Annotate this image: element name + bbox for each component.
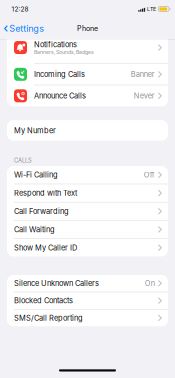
staticText: On [145,279,155,288]
staticText: Banners, Sounds, Badges [34,49,94,55]
button[interactable]: Silence Unknown Callers [7,275,168,292]
staticText: Notifications [34,40,77,49]
staticText: Blocked Contacts [14,296,73,305]
staticText: Call Waiting [14,225,55,234]
button[interactable]: Announce Calls [7,85,168,106]
button[interactable]: My Number [7,120,168,141]
button[interactable]: SMS/Call Reporting [7,310,168,326]
button[interactable]: Call Waiting [7,221,168,238]
staticText: LTE [147,6,156,12]
button[interactable]: Show My Caller ID [7,239,168,256]
staticText: Banner [131,70,155,79]
button[interactable]: Wi-Fi Calling [7,166,168,184]
staticText: Settings [9,23,44,34]
button[interactable]: Notifications [7,39,168,63]
button[interactable]: Respond with Text [7,184,168,202]
staticText: Phone [77,24,98,33]
button[interactable]: Blocked Contacts [7,292,168,309]
staticText: Respond with Text [14,188,77,197]
staticText: My Number [14,126,56,135]
staticText: Wi-Fi Calling [14,170,58,179]
staticText: Incoming Calls [34,70,85,79]
staticText: Show My Caller ID [14,243,77,252]
staticText: 12:28 [11,5,28,13]
button[interactable]: Incoming Calls [7,64,168,85]
staticText: Silence Unknown Callers [14,279,99,288]
staticText: Never [134,91,155,100]
staticText: Off [144,170,155,179]
staticText: SMS/Call Reporting [14,313,83,322]
button[interactable]: Call Forwarding [7,202,168,220]
button[interactable]: Settings [0,20,44,37]
staticText: CALLS [14,157,32,164]
staticText: Announce Calls [34,91,86,100]
staticText: Call Forwarding [14,207,69,216]
